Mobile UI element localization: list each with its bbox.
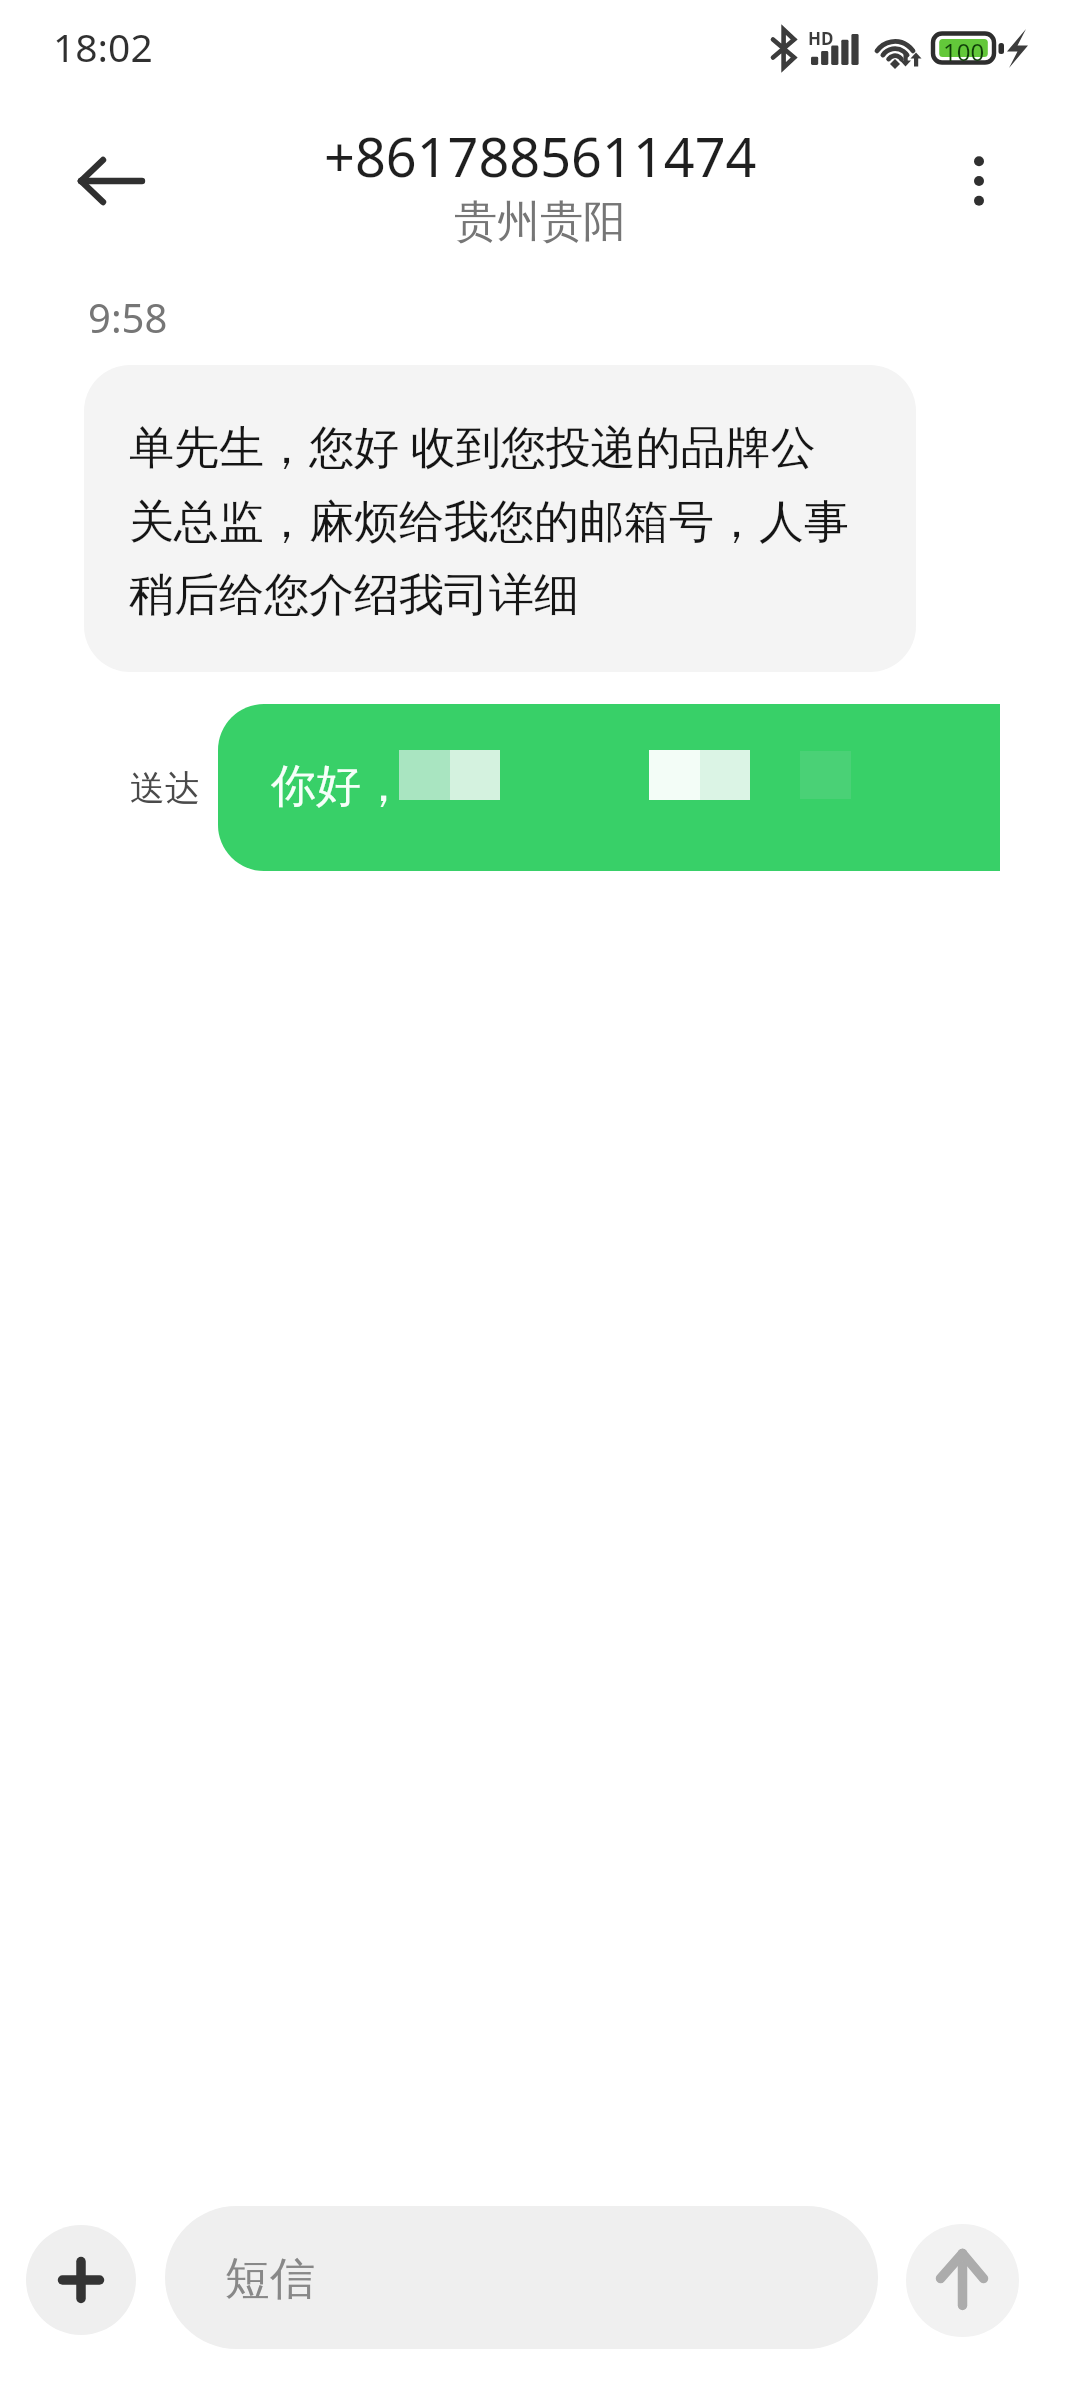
button[interactable]: Back	[51, 121, 171, 241]
staticText: 100	[943, 35, 985, 68]
staticText: 你好，	[271, 758, 406, 815]
staticText: 9:58	[88, 290, 168, 344]
staticText: +8617885611474	[324, 119, 757, 193]
staticText: HD	[808, 27, 834, 50]
button[interactable]: 你好，	[218, 704, 1000, 871]
button[interactable]: 短信	[165, 2206, 878, 2349]
staticText: 送达	[130, 766, 200, 810]
staticText: 单先生，您好 收到您投递的品牌公 关总监，麻烦给我您的邮箱号，人事 稍后给您介绍…	[129, 415, 916, 623]
staticText: 18:02	[53, 20, 153, 73]
button[interactable]: 单先生，您好 收到您投递的品牌公 关总监，麻烦给我您的邮箱号，人事 稍后给您介绍…	[84, 365, 916, 672]
button[interactable]: Add attachment	[26, 2225, 136, 2335]
button[interactable]: Send	[906, 2224, 1019, 2337]
staticText: 贵州贵阳	[454, 195, 626, 249]
button[interactable]: More options	[919, 121, 1039, 241]
staticText: 短信	[225, 2251, 315, 2308]
